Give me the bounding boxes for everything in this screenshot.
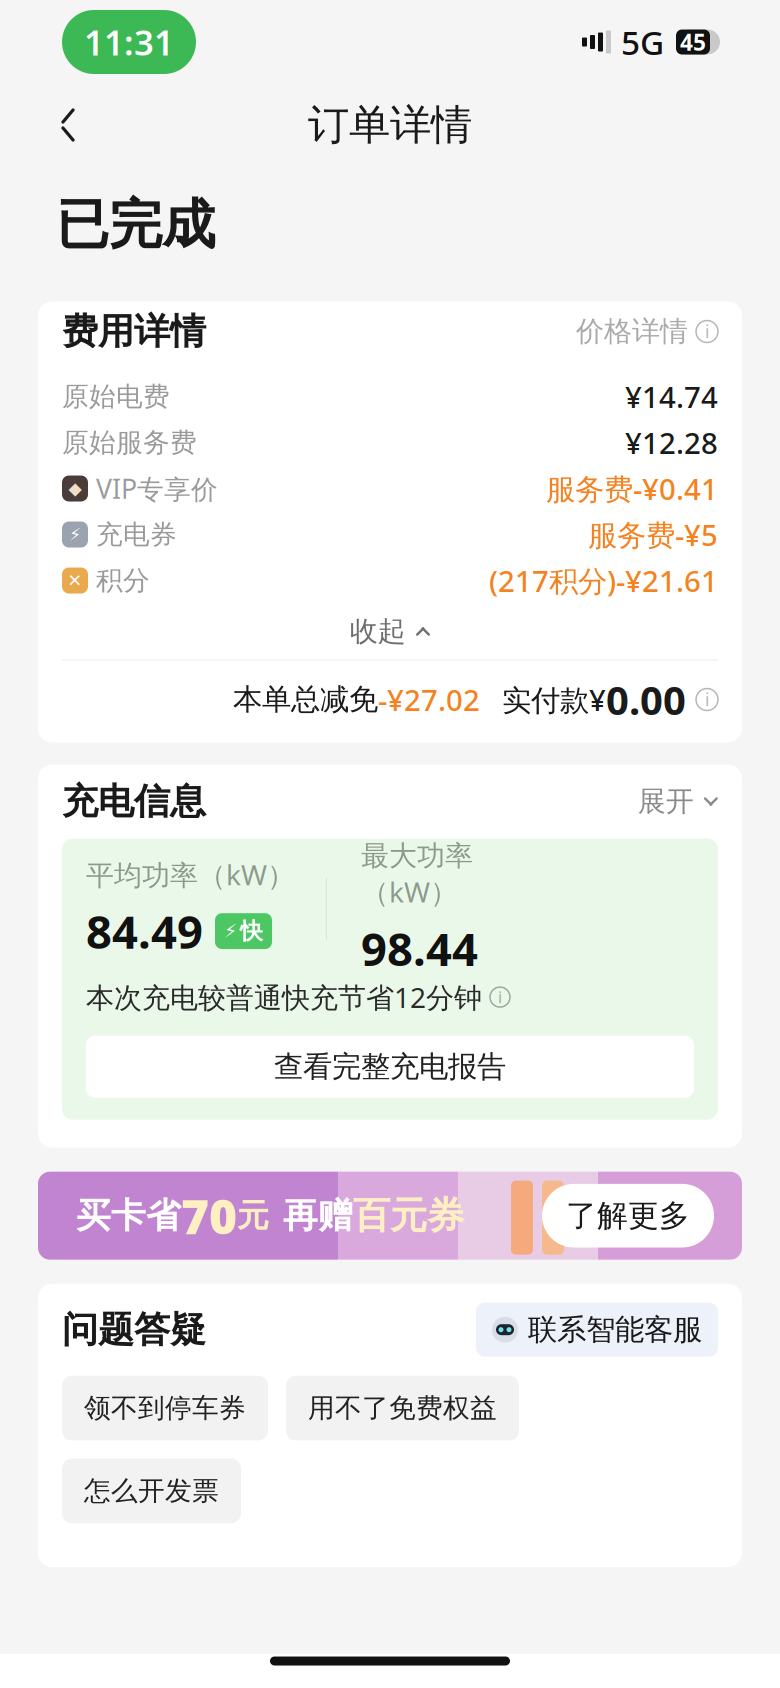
staticText: 积分 [96, 564, 150, 597]
staticText: 买卡省 [76, 1194, 181, 1237]
staticText: 充电券 [96, 518, 177, 551]
staticText: 11:31 [84, 19, 174, 65]
staticText: 已完成 [56, 192, 215, 257]
button[interactable]: 价格详情 [576, 314, 718, 349]
staticText: 充电信息 [62, 779, 206, 824]
staticText: 5G [621, 20, 664, 64]
button[interactable]: 买卡省 [38, 1172, 742, 1260]
staticText: 服务费-¥0.41 [546, 469, 718, 508]
button[interactable]: 联系智能客服 [476, 1303, 718, 1357]
staticText: 问题答疑 [62, 1308, 206, 1352]
staticText: ¥12.28 [625, 423, 718, 462]
staticText: ¥14.74 [625, 377, 718, 416]
staticText: 原始电费 [62, 380, 170, 413]
staticText: 用不了免费权益 [308, 1392, 497, 1424]
staticText: 查看完整充电报告 [274, 1049, 506, 1085]
staticText: ◆ [68, 479, 81, 498]
staticText: 平均功率（kW） [86, 856, 295, 893]
staticText: 联系智能客服 [528, 1312, 702, 1348]
staticText: 服务费-¥5 [588, 515, 718, 554]
staticText: 70 [181, 1184, 237, 1247]
staticText: 收起 [350, 614, 406, 649]
staticText: ⚡︎ [224, 920, 237, 942]
button[interactable]: 怎么开发票 [62, 1458, 241, 1523]
staticText: 了解更多 [566, 1197, 690, 1235]
staticText: 实付款¥ [502, 680, 606, 719]
staticText: (217积分)-¥21.61 [489, 561, 718, 600]
staticText: 本单总减免 [233, 681, 378, 717]
button[interactable]: 领不到停车券 [62, 1376, 268, 1440]
staticText: 领不到停车券 [84, 1392, 246, 1424]
staticText: 45 [680, 27, 706, 57]
staticText: i [498, 986, 502, 1008]
button[interactable]: 展开 [638, 784, 718, 819]
staticText: 本次充电较普通快充节省12分钟 [86, 978, 482, 1016]
staticText: 费用详情 [62, 309, 206, 354]
staticText: 怎么开发票 [84, 1474, 219, 1507]
staticText: i [705, 688, 709, 711]
staticText: 展开 [638, 784, 694, 819]
button[interactable]: 查看完整充电报告 [86, 1036, 694, 1098]
button[interactable]: 用不了免费权益 [286, 1376, 519, 1440]
staticText: 最大功率（kW） [361, 839, 473, 910]
staticText: -¥27.02 [378, 680, 480, 719]
staticText: 0.00 [606, 673, 686, 726]
staticText: VIP专享价 [96, 471, 218, 506]
staticText: 84.49 [86, 901, 203, 961]
button[interactable]: 收起 [62, 603, 718, 659]
staticText: i [705, 320, 709, 343]
staticText: 元 [237, 1196, 269, 1235]
button[interactable]: 返回 [36, 93, 100, 157]
staticText: 再赠 [283, 1194, 353, 1237]
staticText: 订单详情 [308, 100, 472, 150]
staticText: ✕ [67, 571, 82, 590]
staticText: ⚡︎ [69, 525, 81, 544]
staticText: 原始服务费 [62, 426, 197, 459]
staticText: 98.44 [361, 918, 478, 978]
staticText: 价格详情 [576, 314, 688, 349]
staticText: 百元券 [353, 1193, 464, 1239]
staticText: 快 [240, 917, 263, 945]
